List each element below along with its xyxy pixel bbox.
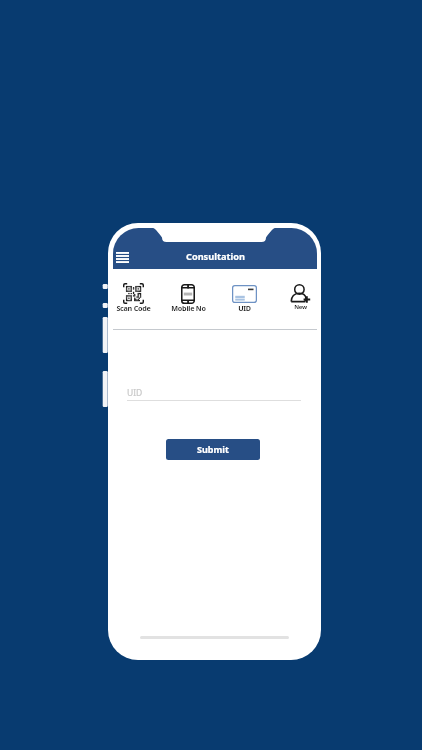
staticText: Submit <box>197 443 229 455</box>
staticText: Consultation <box>186 250 245 263</box>
staticText: New <box>294 303 307 311</box>
button[interactable]: Submit <box>166 439 260 460</box>
button[interactable]: UID <box>127 386 301 401</box>
staticText: UID <box>238 303 251 313</box>
button[interactable]: Mobile No <box>166 283 210 314</box>
staticText: Mobile No <box>171 303 206 313</box>
button[interactable]: Scan Code <box>113 283 155 314</box>
staticText: Scan Code <box>116 303 151 313</box>
staticText: UID <box>127 387 143 399</box>
button[interactable]: UID <box>222 283 266 314</box>
button[interactable]: Menu <box>113 248 132 267</box>
button[interactable]: New <box>278 283 317 312</box>
